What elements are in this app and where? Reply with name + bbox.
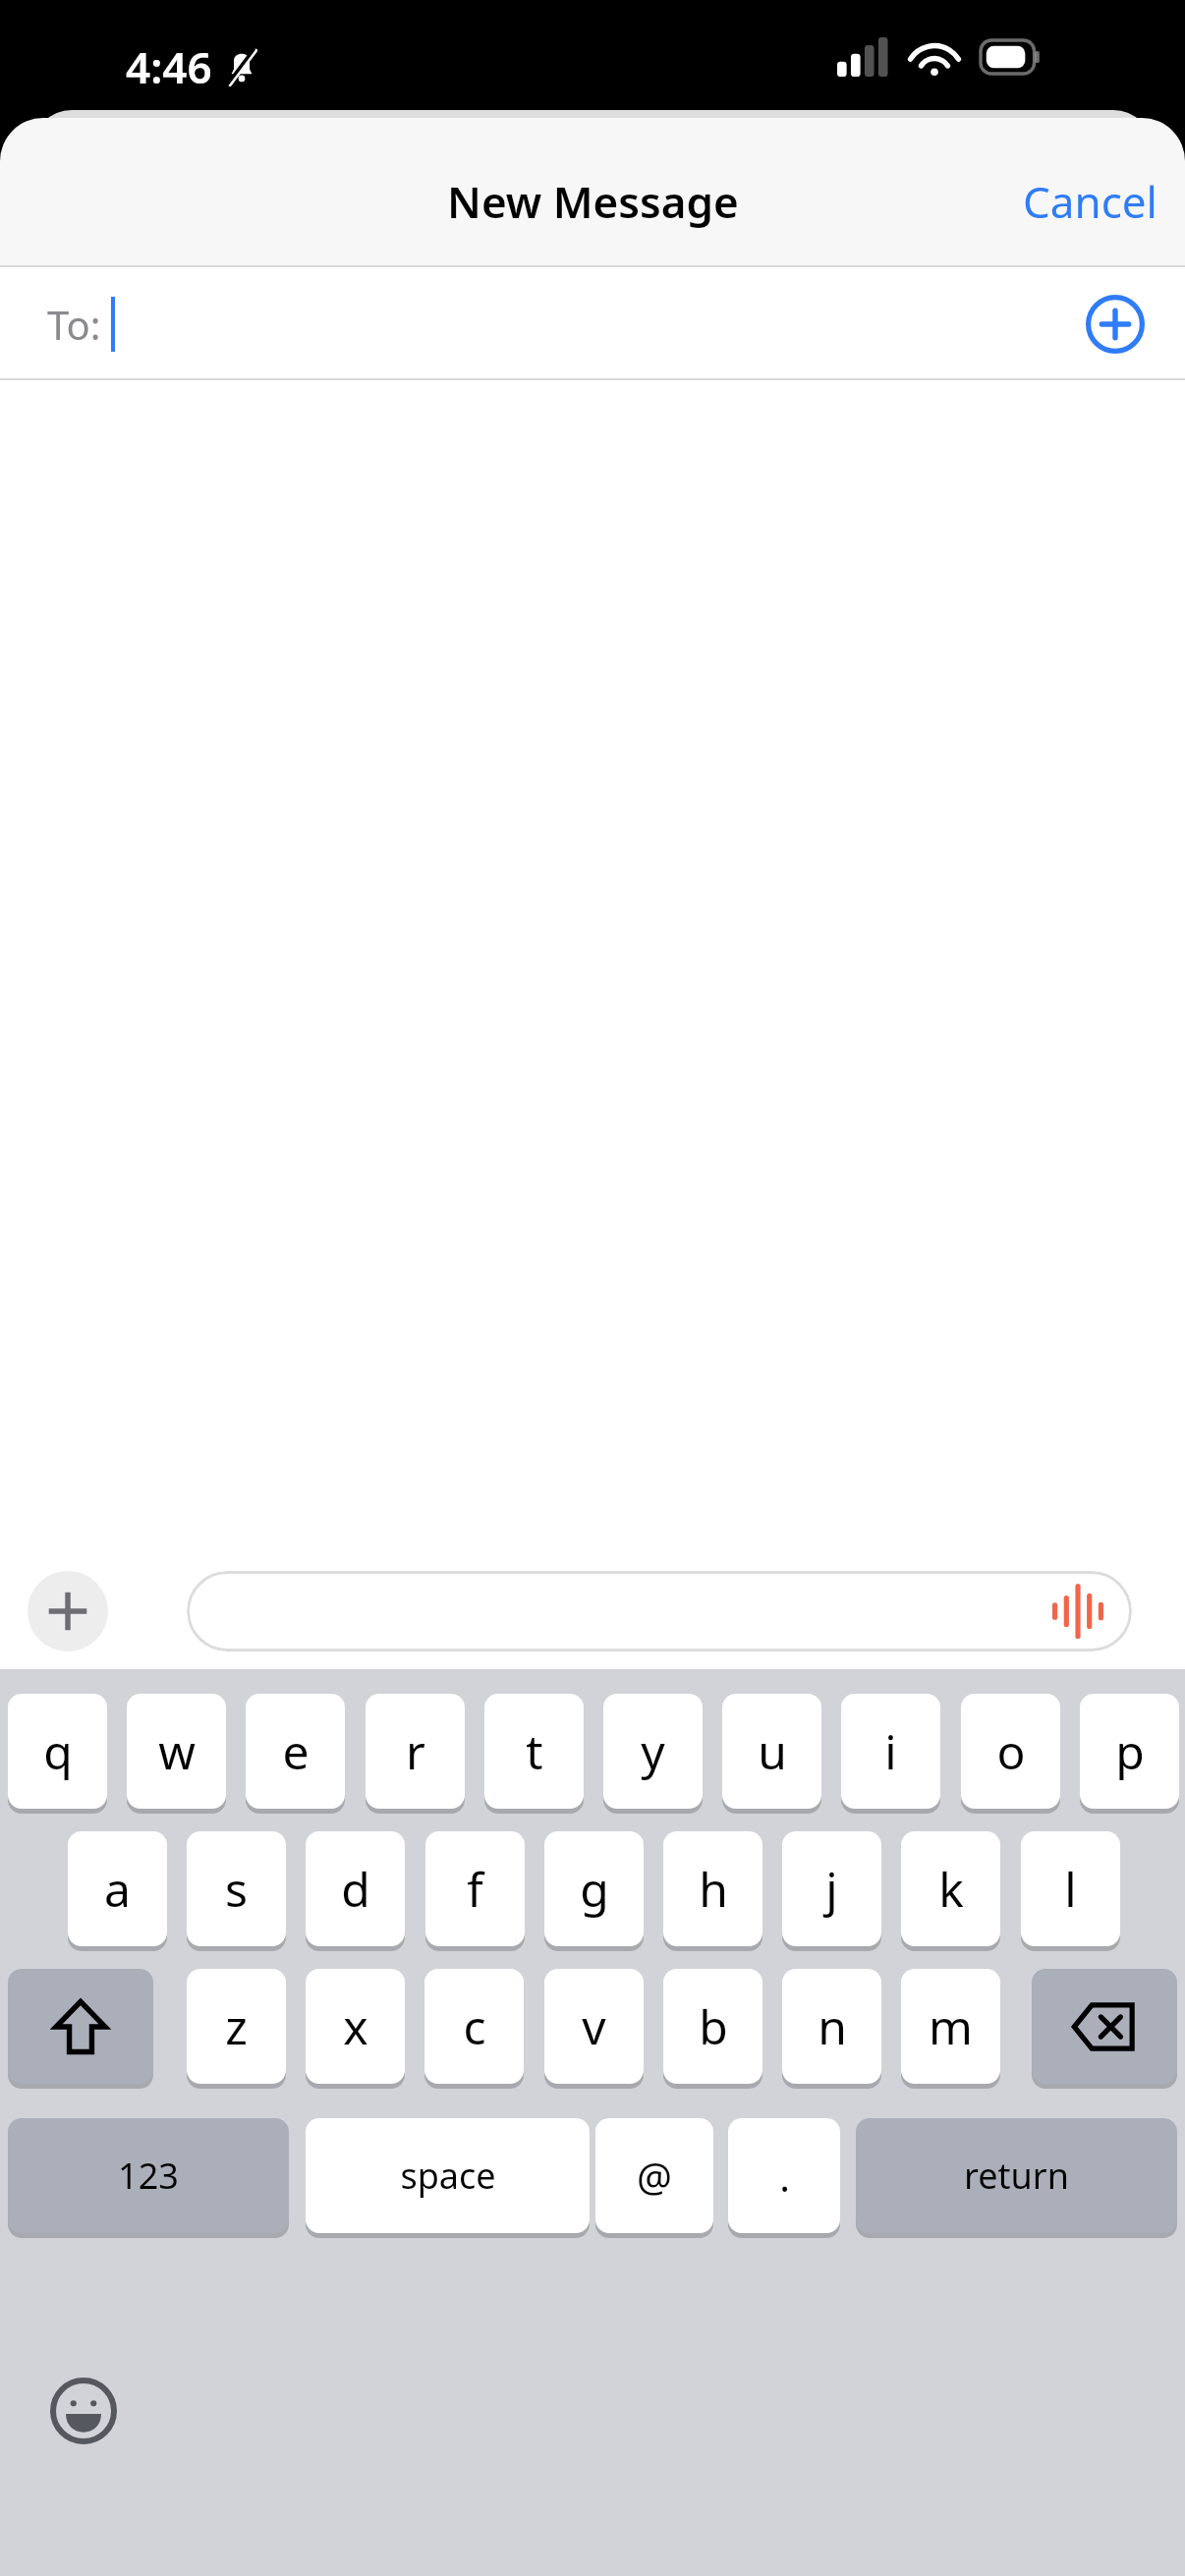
- button[interactable]: l: [1021, 1831, 1120, 1946]
- button[interactable]: j: [782, 1831, 881, 1946]
- button[interactable]: n: [782, 1969, 881, 2084]
- staticText: v: [582, 1994, 606, 2058]
- staticText: o: [996, 1719, 1026, 1783]
- button[interactable]: u: [722, 1694, 821, 1809]
- button[interactable]: a: [68, 1831, 167, 1946]
- staticText: b: [699, 1994, 728, 2058]
- button[interactable]: p: [1080, 1694, 1179, 1809]
- button[interactable]: Shift: [8, 1969, 153, 2084]
- staticText: z: [225, 1994, 248, 2058]
- staticText: n: [818, 1994, 847, 2058]
- button[interactable]: Add attachment: [28, 1571, 108, 1652]
- button[interactable]: g: [544, 1831, 644, 1946]
- staticText: space: [400, 2152, 496, 2200]
- staticText: u: [758, 1719, 787, 1783]
- button[interactable]: w: [127, 1694, 226, 1809]
- staticText: y: [641, 1719, 665, 1783]
- button[interactable]: i: [841, 1694, 940, 1809]
- staticText: j: [825, 1857, 838, 1921]
- button[interactable]: m: [901, 1969, 1000, 2084]
- staticText: h: [699, 1857, 728, 1921]
- staticText: c: [463, 1994, 486, 2058]
- staticText: x: [343, 1994, 368, 2058]
- staticText: Cancel: [1023, 172, 1157, 231]
- staticText: a: [104, 1857, 131, 1921]
- staticText: e: [282, 1719, 310, 1783]
- button[interactable]: 123: [8, 2118, 289, 2233]
- staticText: q: [43, 1719, 73, 1783]
- button[interactable]: Audio message: [187, 1571, 1132, 1652]
- staticText: .: [779, 2150, 790, 2203]
- button[interactable]: t: [484, 1694, 584, 1809]
- staticText: return: [964, 2152, 1069, 2200]
- button[interactable]: Add contact: [1071, 280, 1159, 368]
- button[interactable]: y: [603, 1694, 703, 1809]
- button[interactable]: f: [425, 1831, 525, 1946]
- staticText: k: [938, 1857, 964, 1921]
- button[interactable]: x: [306, 1969, 405, 2084]
- staticText: @: [637, 2150, 672, 2203]
- button[interactable]: Emoji keyboard: [41, 2369, 126, 2453]
- button[interactable]: .: [728, 2118, 840, 2233]
- button[interactable]: h: [663, 1831, 762, 1946]
- button[interactable]: q: [8, 1694, 107, 1809]
- button[interactable]: space: [306, 2118, 590, 2233]
- button[interactable]: Cancel: [995, 158, 1185, 245]
- staticText: 4:46: [126, 37, 212, 96]
- button[interactable]: r: [366, 1694, 465, 1809]
- staticText: g: [580, 1857, 609, 1921]
- button[interactable]: b: [663, 1969, 762, 2084]
- button[interactable]: v: [544, 1969, 644, 2084]
- button[interactable]: z: [187, 1969, 286, 2084]
- staticText: w: [158, 1719, 196, 1783]
- button[interactable]: return: [856, 2118, 1177, 2233]
- staticText: 123: [118, 2152, 179, 2200]
- staticText: d: [341, 1857, 370, 1921]
- button[interactable]: o: [961, 1694, 1060, 1809]
- button[interactable]: Backspace: [1032, 1969, 1177, 2084]
- button[interactable]: d: [306, 1831, 405, 1946]
- button[interactable]: e: [246, 1694, 345, 1809]
- staticText: t: [526, 1719, 543, 1783]
- staticText: New Message: [447, 172, 739, 231]
- staticText: To:: [47, 298, 101, 351]
- staticText: r: [406, 1719, 425, 1783]
- button[interactable]: s: [187, 1831, 286, 1946]
- staticText: i: [884, 1719, 897, 1783]
- button[interactable]: c: [424, 1969, 524, 2084]
- staticText: m: [929, 1994, 973, 2058]
- staticText: l: [1064, 1857, 1077, 1921]
- staticText: f: [467, 1857, 483, 1921]
- button[interactable]: @: [595, 2118, 713, 2233]
- staticText: p: [1115, 1719, 1145, 1783]
- staticText: s: [225, 1857, 248, 1921]
- button[interactable]: k: [901, 1831, 1000, 1946]
- button[interactable]: Audio message: [1047, 1581, 1108, 1642]
